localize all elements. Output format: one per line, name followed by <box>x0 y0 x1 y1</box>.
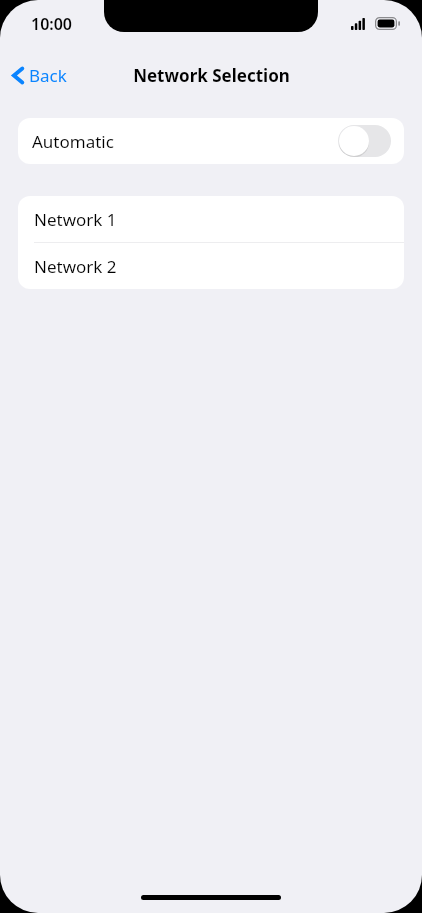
button[interactable]: Automatic <box>18 118 404 164</box>
staticText: Back <box>29 64 67 87</box>
staticText: Network Selection <box>133 64 290 87</box>
button[interactable]: Automatic network selection toggle <box>338 125 391 157</box>
staticText: 10:00 <box>31 13 73 35</box>
button[interactable]: Network 2 <box>18 243 404 289</box>
button[interactable]: Back <box>8 58 71 93</box>
staticText: Network 1 <box>34 208 117 231</box>
button[interactable]: Network 1 <box>18 196 404 242</box>
staticText: Automatic <box>32 130 114 153</box>
staticText: Network 2 <box>34 255 117 278</box>
